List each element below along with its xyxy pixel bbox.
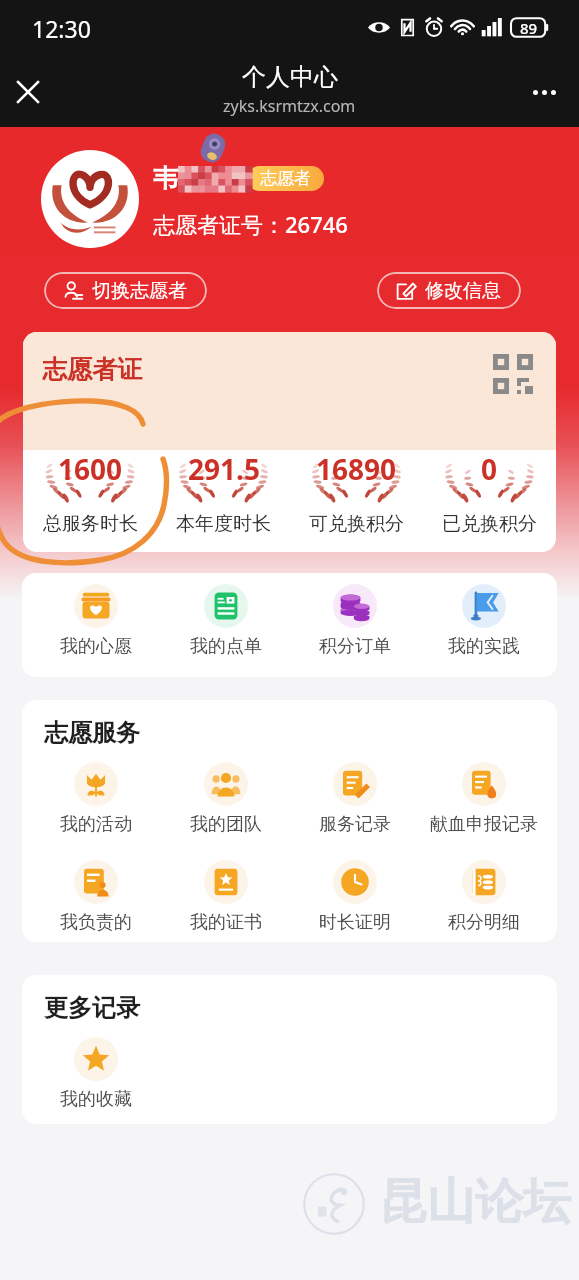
button[interactable]: Close [5, 69, 51, 115]
button[interactable]: 积分订单 [290, 584, 419, 658]
button[interactable]: 切换志愿者 [44, 272, 207, 309]
staticText: 我的心愿 [60, 635, 132, 658]
button[interactable]: 服务记录 [290, 762, 419, 836]
staticText: zyks.ksrmtzx.com [223, 95, 356, 117]
staticText: 献血申报记录 [430, 813, 538, 836]
staticText: 0 [481, 450, 498, 488]
staticText: 志愿者证 [42, 354, 142, 385]
button[interactable]: 修改信息 [377, 272, 521, 309]
staticText: 已兑换积分 [442, 512, 537, 536]
staticText: 韦 [153, 163, 178, 194]
staticText: 我负责的 [60, 911, 132, 934]
staticText: 可兑换积分 [309, 512, 404, 536]
staticText: 更多记录 [44, 993, 140, 1023]
button[interactable]: 我的心愿 [31, 584, 161, 658]
button[interactable]: QR code [493, 354, 537, 398]
staticText: 时长证明 [319, 911, 391, 934]
button[interactable]: 献血申报记录 [419, 762, 548, 836]
button[interactable]: 0 [423, 450, 556, 552]
staticText: 我的点单 [190, 635, 262, 658]
button[interactable]: 我负责的 [31, 860, 161, 934]
staticText: 志愿者证号：26746 [153, 209, 348, 239]
button[interactable]: 我的证书 [161, 860, 290, 934]
button[interactable]: 我的活动 [31, 762, 161, 836]
staticText: 总服务时长 [43, 512, 138, 536]
staticText: 志愿服务 [44, 718, 140, 748]
staticText: 积分订单 [319, 635, 391, 658]
staticText: 我的证书 [190, 911, 262, 934]
button[interactable]: 志愿者 [247, 166, 324, 191]
staticText: 志愿者 [260, 168, 311, 189]
button[interactable]: 1600 [23, 450, 157, 552]
staticText: 切换志愿者 [92, 279, 187, 303]
button[interactable]: 时长证明 [290, 860, 419, 934]
staticText: 昆山论坛 [379, 1172, 571, 1232]
button[interactable]: 积分明细 [419, 860, 548, 934]
button[interactable]: 291.5 [157, 450, 290, 552]
staticText: 16890 [316, 450, 397, 488]
staticText: 我的收藏 [60, 1088, 132, 1111]
staticText: 积分明细 [448, 911, 520, 934]
staticText: 个人中心 [242, 62, 338, 92]
staticText: 我的实践 [448, 635, 520, 658]
button[interactable]: More options [521, 69, 567, 115]
button[interactable]: 我的实践 [419, 584, 548, 658]
staticText: 服务记录 [319, 813, 391, 836]
button[interactable]: 我的收藏 [31, 1037, 160, 1111]
staticText: 89 [520, 18, 538, 38]
staticText: 1600 [58, 450, 123, 488]
button[interactable]: 16890 [290, 450, 423, 552]
button[interactable]: 我的团队 [161, 762, 290, 836]
staticText: 我的团队 [190, 813, 262, 836]
staticText: 我的活动 [60, 813, 132, 836]
staticText: 修改信息 [425, 279, 501, 303]
staticText: 12:30 [32, 13, 91, 44]
staticText: 本年度时长 [176, 512, 271, 536]
button[interactable]: 我的点单 [161, 584, 290, 658]
staticText: 291.5 [188, 450, 260, 488]
